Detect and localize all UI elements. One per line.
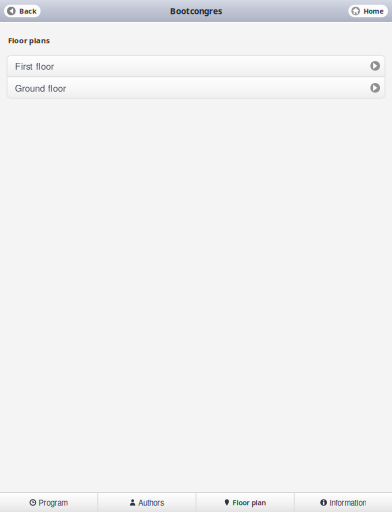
staticText: Bootcongres: [170, 5, 222, 17]
staticText: Back: [19, 6, 36, 16]
button[interactable]: Floor plan: [196, 493, 294, 512]
staticText: Home: [364, 6, 384, 16]
staticText: Floor plans: [8, 35, 50, 45]
button[interactable]: Back: [4, 5, 41, 17]
button[interactable]: Information: [295, 493, 392, 512]
button[interactable]: Home: [348, 5, 388, 17]
staticText: Ground floor: [15, 81, 66, 94]
staticText: Information: [329, 497, 366, 508]
button[interactable]: Ground floor: [7, 77, 385, 98]
staticText: First floor: [15, 59, 54, 72]
staticText: Floor plan: [233, 498, 267, 507]
staticText: Authors: [138, 497, 164, 508]
staticText: Program: [39, 497, 68, 508]
button[interactable]: Program: [0, 493, 97, 512]
button[interactable]: Authors: [98, 493, 195, 512]
button[interactable]: First floor: [7, 55, 385, 76]
